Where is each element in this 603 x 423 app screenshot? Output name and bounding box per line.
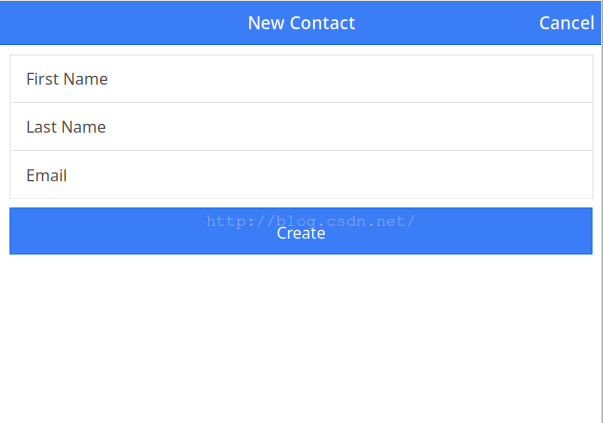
- staticText: New Contact: [247, 11, 355, 34]
- staticText: http://blog.csdn.net/: [206, 210, 416, 230]
- button[interactable]: First Name: [11, 55, 592, 103]
- staticText: Cancel: [539, 11, 595, 34]
- staticText: Last Name: [26, 116, 106, 137]
- button[interactable]: Email: [11, 151, 592, 199]
- button[interactable]: Cancel: [539, 11, 603, 34]
- staticText: Create: [276, 222, 325, 243]
- button[interactable]: http://blog.csdn.net/: [10, 208, 592, 254]
- staticText: Email: [26, 164, 67, 186]
- staticText: First Name: [26, 68, 108, 89]
- button[interactable]: Last Name: [11, 103, 592, 151]
